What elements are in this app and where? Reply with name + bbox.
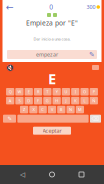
staticText: F xyxy=(37,98,39,103)
button[interactable]: T xyxy=(43,88,51,95)
button[interactable]: Back xyxy=(4,2,16,12)
staticText: empezar xyxy=(36,51,58,58)
button[interactable]: Q xyxy=(6,88,14,95)
staticText: A xyxy=(9,98,12,103)
staticText: ◁ xyxy=(20,171,25,178)
button[interactable]: Y xyxy=(52,88,61,95)
button[interactable]: J xyxy=(62,97,70,104)
button[interactable]: S xyxy=(15,97,23,104)
staticText: Empieza por "E" xyxy=(26,18,78,27)
staticText: K xyxy=(74,98,76,103)
staticText: 🔇 xyxy=(6,64,14,71)
staticText: Z xyxy=(23,107,25,112)
staticText: D xyxy=(27,98,30,103)
button[interactable]: F xyxy=(34,97,42,104)
staticText: R xyxy=(37,89,39,94)
button[interactable]: K xyxy=(71,97,79,104)
button[interactable]: Delete xyxy=(90,115,101,123)
button[interactable]: D xyxy=(25,97,33,104)
button[interactable]: W xyxy=(15,88,23,95)
button[interactable]: C xyxy=(39,106,47,113)
button[interactable]: N xyxy=(66,106,75,113)
staticText: P xyxy=(93,89,95,94)
button[interactable]: P xyxy=(90,88,98,95)
button[interactable]: V xyxy=(48,106,56,113)
button[interactable]: Messages xyxy=(92,65,99,70)
button[interactable]: Back xyxy=(15,168,29,180)
staticText: B xyxy=(60,107,63,112)
staticText: 300 xyxy=(86,3,95,11)
button[interactable]: Space xyxy=(17,115,89,123)
staticText: J xyxy=(65,98,66,103)
button[interactable]: I xyxy=(71,88,79,95)
staticText: X xyxy=(32,107,34,112)
button[interactable]: O xyxy=(80,88,89,95)
button[interactable]: X xyxy=(29,106,37,113)
button[interactable]: H xyxy=(52,97,61,104)
button[interactable]: Mute sound xyxy=(5,63,15,71)
button[interactable]: M xyxy=(76,106,84,113)
staticText: V xyxy=(51,107,53,112)
button[interactable]: Recents xyxy=(74,168,88,180)
button[interactable]: Ñ xyxy=(90,97,98,104)
button[interactable]: empezar xyxy=(7,50,97,59)
staticText: W xyxy=(17,89,21,94)
button[interactable]: G xyxy=(43,97,51,104)
staticText: I xyxy=(75,89,76,94)
staticText: Dar inicio a una cosa. xyxy=(33,36,70,42)
button[interactable]: A xyxy=(6,97,14,104)
button[interactable]: Aceptar xyxy=(33,127,71,135)
button[interactable]: Edit xyxy=(3,115,16,123)
staticText: E xyxy=(28,89,30,94)
staticText: ✎ xyxy=(89,51,95,58)
staticText: Aceptar xyxy=(42,127,61,134)
staticText: Y xyxy=(56,89,58,94)
staticText: G xyxy=(46,98,49,103)
staticText: Ñ xyxy=(92,98,95,103)
staticText: 0 xyxy=(49,3,53,11)
staticText: E xyxy=(48,69,56,88)
staticText: Q xyxy=(9,89,12,94)
button[interactable]: L xyxy=(80,97,89,104)
staticText: O xyxy=(83,89,86,94)
staticText: S xyxy=(18,98,20,103)
button[interactable]: Coins 300 xyxy=(86,3,100,11)
staticText: M xyxy=(78,107,82,112)
staticText: ← xyxy=(6,2,14,12)
button[interactable]: Z xyxy=(20,106,28,113)
button[interactable]: Home xyxy=(45,168,59,180)
button[interactable]: R xyxy=(34,88,42,95)
staticText: ✎ xyxy=(7,116,11,122)
staticText: U xyxy=(64,89,67,94)
staticText: H xyxy=(55,98,58,103)
button[interactable]: B xyxy=(57,106,65,113)
staticText: N xyxy=(69,107,72,112)
staticText: C xyxy=(41,107,44,112)
staticText: ⌫ xyxy=(91,116,99,122)
staticText: L xyxy=(83,98,85,103)
button[interactable]: U xyxy=(62,88,70,95)
button[interactable]: E xyxy=(25,88,33,95)
staticText: T xyxy=(46,89,48,94)
